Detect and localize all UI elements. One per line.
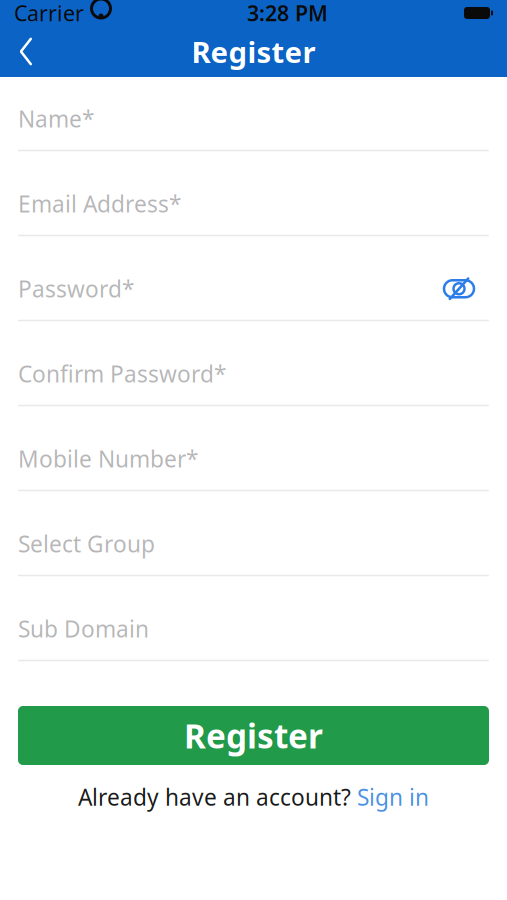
staticText: Sub Domain xyxy=(18,614,149,644)
button[interactable]: Back xyxy=(0,26,52,77)
staticText: Carrier xyxy=(14,0,84,27)
staticText: Already have an account? xyxy=(78,782,351,812)
staticText: Confirm Password* xyxy=(18,359,226,389)
staticText: Name* xyxy=(18,104,94,134)
staticText: Email Address* xyxy=(18,189,181,219)
staticText: Password* xyxy=(18,274,134,304)
button[interactable]: Sub Domain xyxy=(18,587,489,672)
button[interactable]: Sign in xyxy=(357,782,429,812)
staticText: 3:28 PM xyxy=(247,0,328,27)
staticText: Register xyxy=(191,32,315,71)
button[interactable]: Select Group xyxy=(18,502,489,587)
staticText: Mobile Number* xyxy=(18,444,198,474)
button[interactable]: Email Address* xyxy=(18,162,489,247)
staticText: Register xyxy=(184,713,323,758)
button[interactable]: Name* xyxy=(18,77,489,162)
button[interactable]: Password* xyxy=(18,247,489,332)
button[interactable]: Mobile Number* xyxy=(18,417,489,502)
staticText: Sign in xyxy=(357,782,429,812)
button[interactable]: Register xyxy=(18,706,489,765)
button[interactable]: Confirm Password* xyxy=(18,332,489,417)
staticText: Select Group xyxy=(18,529,155,559)
